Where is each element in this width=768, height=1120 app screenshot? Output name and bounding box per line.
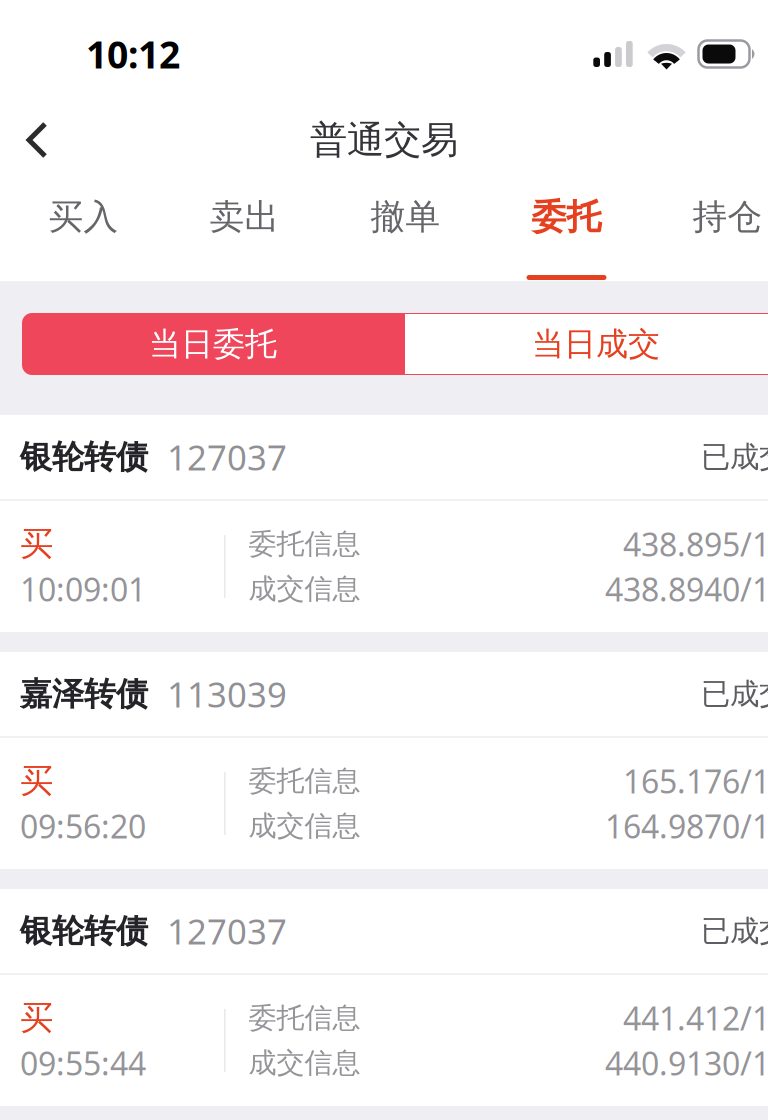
- staticText: 已成交: [701, 676, 768, 712]
- staticText: 普通交易: [310, 117, 458, 163]
- staticText: 买: [20, 997, 53, 1038]
- staticText: 卖出: [209, 196, 279, 238]
- staticText: 438.8940/10: [605, 568, 768, 610]
- staticText: 10:09:01: [20, 568, 146, 610]
- button[interactable]: 卖出: [164, 182, 325, 281]
- staticText: 09:55:44: [20, 1042, 146, 1084]
- staticText: 成交信息: [249, 572, 361, 606]
- staticText: 438.895/10: [623, 523, 768, 565]
- staticText: 441.412/10: [623, 997, 768, 1039]
- staticText: 已成交: [701, 913, 768, 949]
- staticText: 成交信息: [249, 1046, 361, 1080]
- staticText: 持仓: [692, 196, 762, 238]
- staticText: 10:12: [86, 29, 180, 79]
- staticText: 成交信息: [249, 809, 361, 843]
- button[interactable]: 买入: [3, 182, 164, 281]
- button[interactable]: 当日成交: [404, 313, 768, 375]
- staticText: 当日委托: [149, 324, 277, 364]
- staticText: 嘉泽转债: [20, 674, 148, 714]
- staticText: 164.9870/10: [605, 805, 768, 847]
- staticText: 127037: [167, 908, 287, 954]
- staticText: 165.176/10: [623, 760, 768, 802]
- staticText: 当日成交: [532, 324, 660, 364]
- button[interactable]: 当日委托: [22, 313, 404, 375]
- staticText: 113039: [167, 671, 287, 717]
- staticText: 委托: [531, 196, 601, 238]
- button[interactable]: 银轮转债: [0, 889, 768, 1106]
- button[interactable]: 持仓: [647, 182, 768, 281]
- staticText: 440.9130/10: [605, 1042, 768, 1084]
- button[interactable]: Back: [0, 98, 74, 182]
- staticText: 买入: [48, 196, 118, 238]
- staticText: 已成交: [701, 439, 768, 475]
- staticText: 127037: [167, 434, 287, 480]
- button[interactable]: 委托: [486, 182, 647, 281]
- staticText: 委托信息: [249, 764, 361, 798]
- staticText: 委托信息: [249, 527, 361, 561]
- staticText: 委托信息: [249, 1001, 361, 1035]
- button[interactable]: 撤单: [325, 182, 486, 281]
- button[interactable]: 银轮转债: [0, 415, 768, 632]
- staticText: 买: [20, 523, 53, 564]
- staticText: 银轮转债: [20, 437, 148, 477]
- staticText: 09:56:20: [20, 805, 146, 847]
- staticText: 撤单: [370, 196, 440, 238]
- button[interactable]: 嘉泽转债: [0, 652, 768, 869]
- staticText: 银轮转债: [20, 911, 148, 951]
- staticText: 买: [20, 760, 53, 801]
